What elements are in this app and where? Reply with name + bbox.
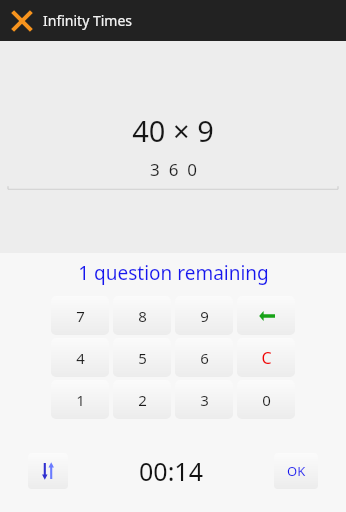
- staticText: 1 question remaining: [78, 260, 269, 286]
- staticText: 4: [76, 348, 85, 368]
- staticText: 1: [76, 390, 85, 410]
- staticText: OK: [287, 462, 306, 480]
- staticText: 6: [200, 348, 209, 368]
- button[interactable]: 5: [113, 338, 171, 377]
- staticText: 40 × 9: [132, 111, 214, 150]
- button[interactable]: C: [237, 338, 295, 377]
- staticText: 8: [138, 306, 147, 326]
- staticText: 2: [138, 390, 147, 410]
- button[interactable]: 0: [237, 380, 295, 419]
- staticText: C: [261, 347, 272, 369]
- button[interactable]: OK: [274, 453, 318, 489]
- button[interactable]: 6: [175, 338, 233, 377]
- button[interactable]: 4: [51, 338, 109, 377]
- button[interactable]: 9: [175, 296, 233, 335]
- button[interactable]: Change order: [28, 453, 68, 489]
- button[interactable]: 2: [113, 380, 171, 419]
- button[interactable]: 1: [51, 380, 109, 419]
- staticText: 3: [200, 390, 209, 410]
- button[interactable]: 8: [113, 296, 171, 335]
- staticText: Infinity Times: [43, 11, 133, 30]
- button[interactable]: Backspace: [237, 296, 295, 335]
- button[interactable]: 7: [51, 296, 109, 335]
- staticText: 3 6 0: [150, 158, 197, 181]
- staticText: 0: [262, 390, 271, 410]
- staticText: 9: [200, 306, 209, 326]
- staticText: 7: [76, 306, 85, 326]
- other: Infinity Times logo: [9, 8, 35, 34]
- staticText: 00:14: [139, 454, 203, 488]
- staticText: 5: [138, 348, 147, 368]
- button[interactable]: 3: [175, 380, 233, 419]
